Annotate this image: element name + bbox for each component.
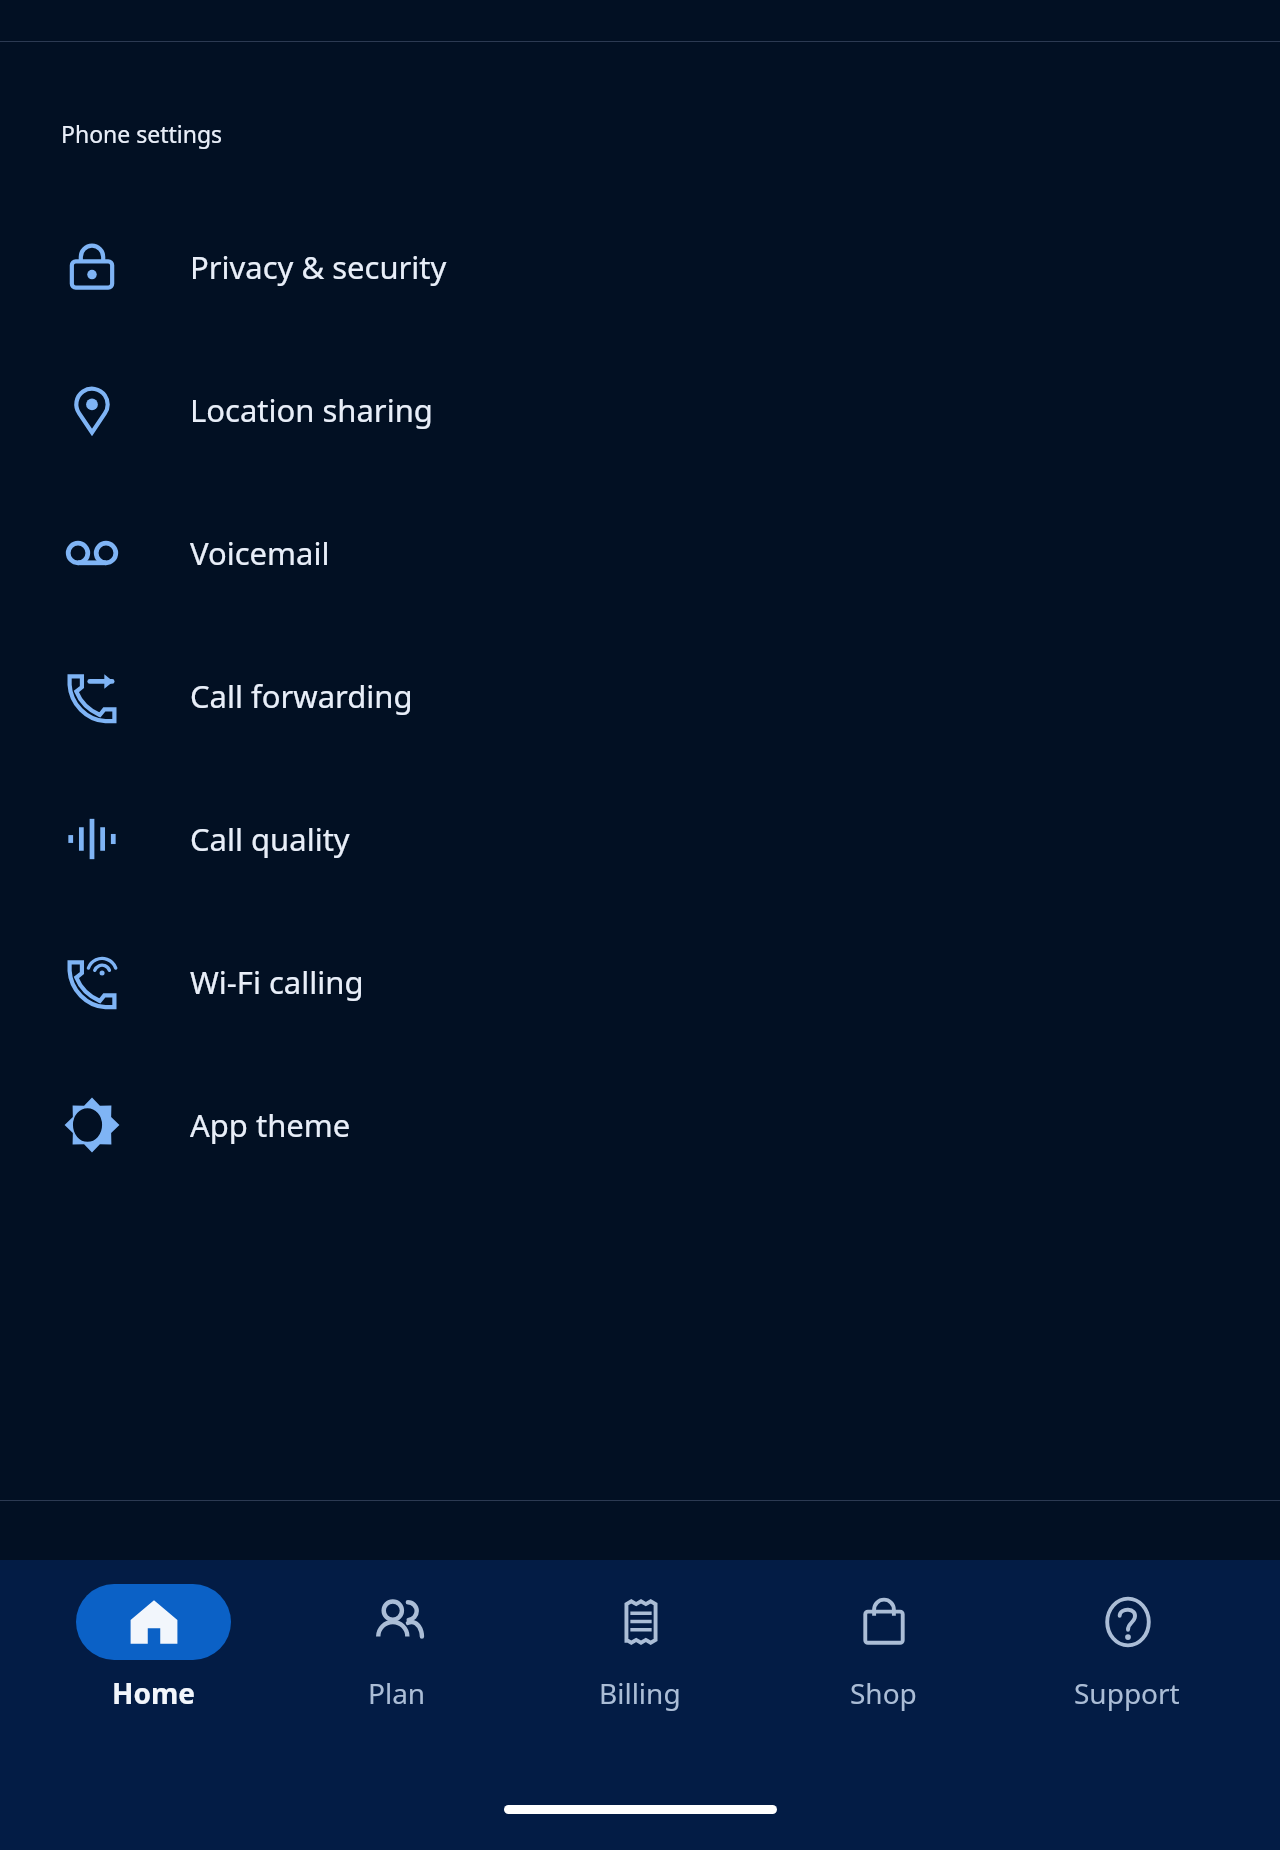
staticText: Privacy & security [190,246,447,288]
button[interactable]: Call forwarding [0,624,1280,767]
staticText: Home [112,1674,195,1712]
button[interactable]: Voicemail [0,481,1280,624]
staticText: Phone settings [61,118,223,149]
staticText: App theme [190,1104,351,1146]
staticText: Wi-Fi calling [190,961,364,1003]
staticText: Support [1074,1674,1180,1712]
button[interactable]: Support [1037,1584,1217,1712]
button[interactable]: Shop [793,1584,973,1712]
button[interactable]: App theme [0,1053,1280,1196]
staticText: Billing [599,1674,681,1712]
staticText: Plan [368,1674,426,1712]
button[interactable]: Wi-Fi calling [0,910,1280,1053]
staticText: Call forwarding [190,675,413,717]
button[interactable]: Billing [550,1584,730,1712]
button[interactable]: Home [63,1584,243,1712]
staticText: Voicemail [190,532,330,574]
button[interactable]: Privacy & security [0,195,1280,338]
staticText: Location sharing [190,389,433,431]
button[interactable]: Location sharing [0,338,1280,481]
staticText: Call quality [190,818,350,860]
staticText: Shop [850,1674,917,1712]
button[interactable]: Plan [307,1584,487,1712]
button[interactable]: Call quality [0,767,1280,910]
